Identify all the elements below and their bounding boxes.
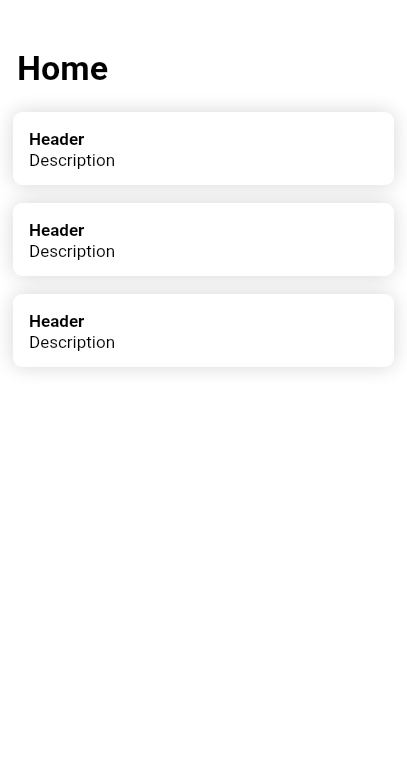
button[interactable]: Header <box>13 203 394 276</box>
button[interactable]: Header <box>13 112 394 185</box>
button[interactable]: Header <box>13 294 394 367</box>
staticText: Home <box>17 48 109 88</box>
staticText: Description <box>29 241 116 261</box>
staticText: Description <box>29 332 116 352</box>
staticText: Header <box>29 129 85 149</box>
staticText: Header <box>29 220 85 240</box>
staticText: Header <box>29 311 85 331</box>
staticText: Description <box>29 150 116 170</box>
